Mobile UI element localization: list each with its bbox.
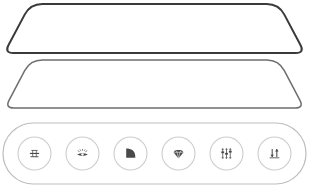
button[interactable]: Transfer direction [257,136,292,171]
button[interactable]: Gem quality [161,136,196,171]
button[interactable]: Gradient wedge [113,136,148,171]
button[interactable]: Fader levels [209,136,244,171]
button[interactable]: Press plates [17,136,52,171]
button[interactable]: Clarity [65,136,100,171]
